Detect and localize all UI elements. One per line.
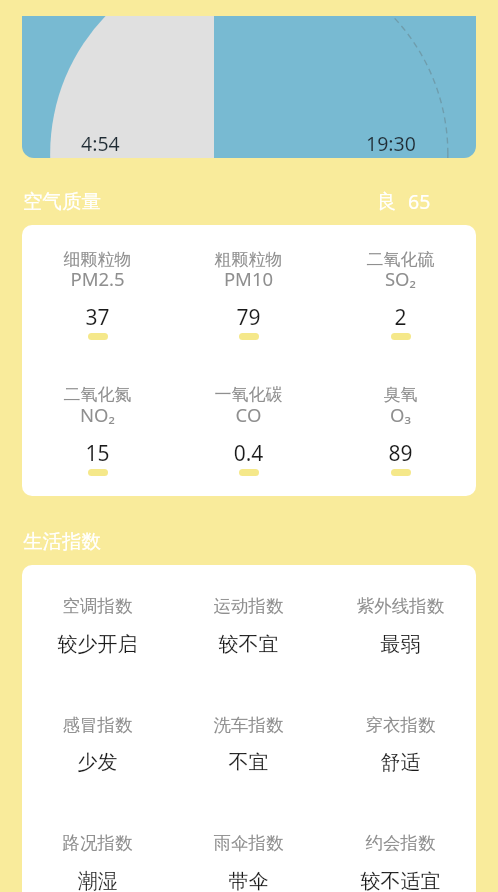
button[interactable]: 生活指数	[0, 524, 498, 550]
staticText: 0.4	[173, 439, 324, 468]
staticText: 感冒指数	[22, 714, 173, 736]
staticText: 2	[325, 303, 476, 332]
staticText: NO₂	[22, 402, 173, 427]
button[interactable]	[239, 469, 259, 476]
staticText: 少发	[22, 750, 173, 775]
staticText: 19:30	[366, 130, 416, 157]
staticText: 65	[408, 188, 431, 214]
staticText: 粗颗粒物	[173, 249, 324, 270]
staticText: 不宜	[173, 750, 324, 775]
staticText: 紫外线指数	[325, 595, 476, 617]
staticText: 舒适	[325, 750, 476, 775]
staticText: 细颗粒物	[22, 249, 173, 270]
staticText: PM2.5	[22, 266, 173, 291]
staticText: SO₂	[325, 266, 476, 291]
button[interactable]	[88, 333, 108, 340]
staticText: 15	[22, 439, 173, 468]
button[interactable]: 4:54	[22, 16, 476, 158]
staticText: 二氧化硫	[325, 249, 476, 270]
staticText: 约会指数	[325, 832, 476, 854]
staticText: 洗车指数	[173, 714, 324, 736]
staticText: 37	[22, 303, 173, 332]
button[interactable]	[391, 333, 411, 340]
staticText: 臭氧	[325, 384, 476, 405]
staticText: 较不宜	[173, 632, 324, 657]
button[interactable]: 空气质量	[0, 184, 498, 210]
button[interactable]	[391, 469, 411, 476]
staticText: 良	[377, 189, 397, 214]
staticText: 运动指数	[173, 595, 324, 617]
staticText: 79	[173, 303, 324, 332]
staticText: O₃	[325, 402, 476, 427]
button[interactable]	[88, 469, 108, 476]
staticText: 较不适宜	[325, 869, 476, 892]
staticText: 最弱	[325, 632, 476, 657]
staticText: 空调指数	[22, 595, 173, 617]
button[interactable]	[239, 333, 259, 340]
staticText: 空气质量	[23, 189, 101, 214]
staticText: 潮湿	[22, 869, 173, 892]
staticText: 一氧化碳	[173, 384, 324, 405]
staticText: 89	[325, 439, 476, 468]
staticText: 二氧化氮	[22, 384, 173, 405]
staticText: 4:54	[81, 130, 120, 157]
staticText: CO	[173, 402, 324, 427]
staticText: 生活指数	[23, 529, 101, 554]
staticText: 路况指数	[22, 832, 173, 854]
staticText: PM10	[173, 266, 324, 291]
staticText: 较少开启	[22, 632, 173, 657]
staticText: 带伞	[173, 869, 324, 892]
staticText: 雨伞指数	[173, 832, 324, 854]
staticText: 穿衣指数	[325, 714, 476, 736]
